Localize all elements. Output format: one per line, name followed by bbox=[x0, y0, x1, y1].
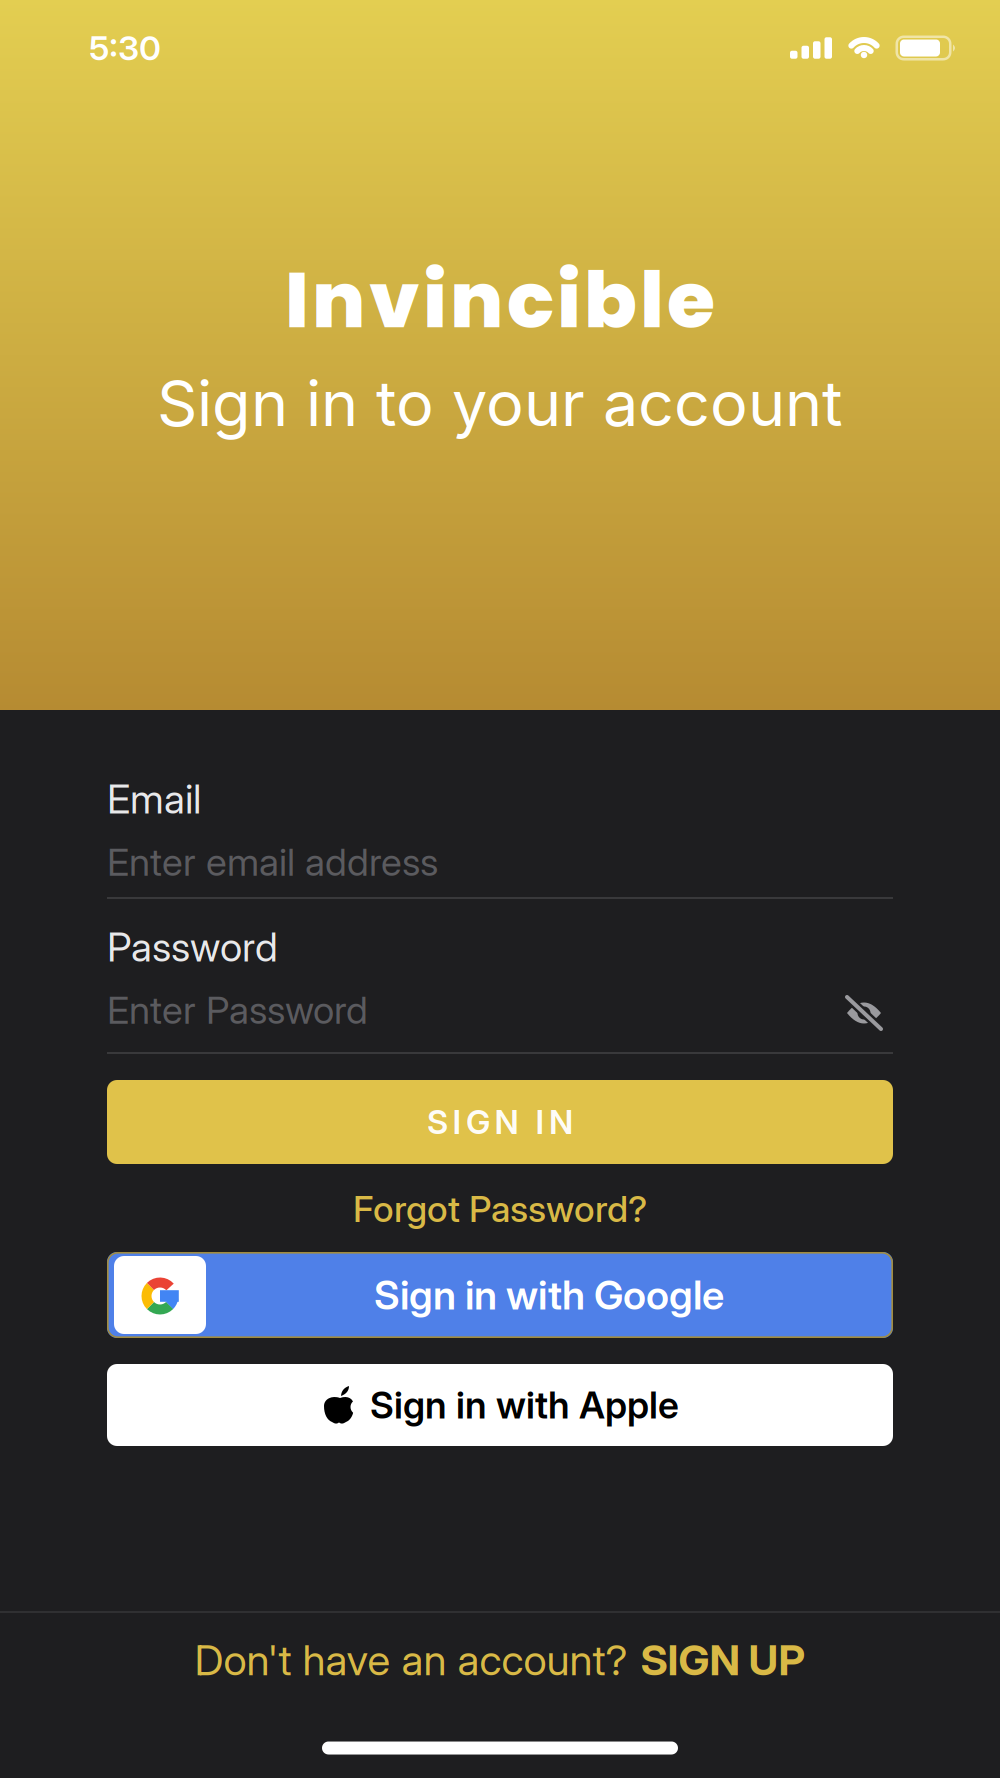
staticText: SIGN UP bbox=[640, 1635, 805, 1685]
staticText: Sign in to your account bbox=[157, 365, 843, 441]
staticText: c bbox=[507, 245, 554, 355]
staticText: Enter Password bbox=[107, 987, 368, 1033]
staticText: I bbox=[535, 1102, 544, 1142]
button[interactable]: S bbox=[107, 1080, 893, 1164]
staticText: Forgot Password? bbox=[353, 1187, 647, 1231]
staticText: v bbox=[369, 245, 420, 355]
staticText: i bbox=[423, 245, 447, 355]
button[interactable]: Forgot Password? bbox=[353, 1187, 647, 1231]
button[interactable]: Sign in with Apple bbox=[107, 1364, 893, 1446]
staticText: N bbox=[549, 1102, 573, 1142]
staticText: e bbox=[667, 245, 715, 355]
staticText: n bbox=[312, 245, 366, 355]
staticText: n bbox=[450, 245, 504, 355]
staticText: Enter email address bbox=[107, 839, 438, 885]
staticText: I bbox=[285, 245, 309, 355]
staticText: G bbox=[466, 1102, 490, 1142]
staticText: Email bbox=[107, 775, 201, 823]
staticText: Don't have an account? bbox=[194, 1635, 627, 1685]
button[interactable]: Sign in with Google bbox=[107, 1252, 893, 1338]
staticText: N bbox=[494, 1102, 518, 1142]
staticText: b bbox=[584, 245, 637, 355]
button[interactable]: Show password bbox=[846, 998, 882, 1028]
button[interactable]: SIGN UP bbox=[640, 1635, 805, 1685]
staticText: S bbox=[427, 1102, 448, 1142]
staticText: 5:30 bbox=[89, 27, 161, 68]
staticText: l bbox=[640, 245, 664, 355]
staticText: i bbox=[557, 245, 581, 355]
staticText: I bbox=[452, 1102, 461, 1142]
staticText: Sign in with Apple bbox=[370, 1383, 679, 1427]
staticText: Sign in with Google bbox=[374, 1271, 724, 1319]
staticText: Password bbox=[107, 923, 278, 971]
